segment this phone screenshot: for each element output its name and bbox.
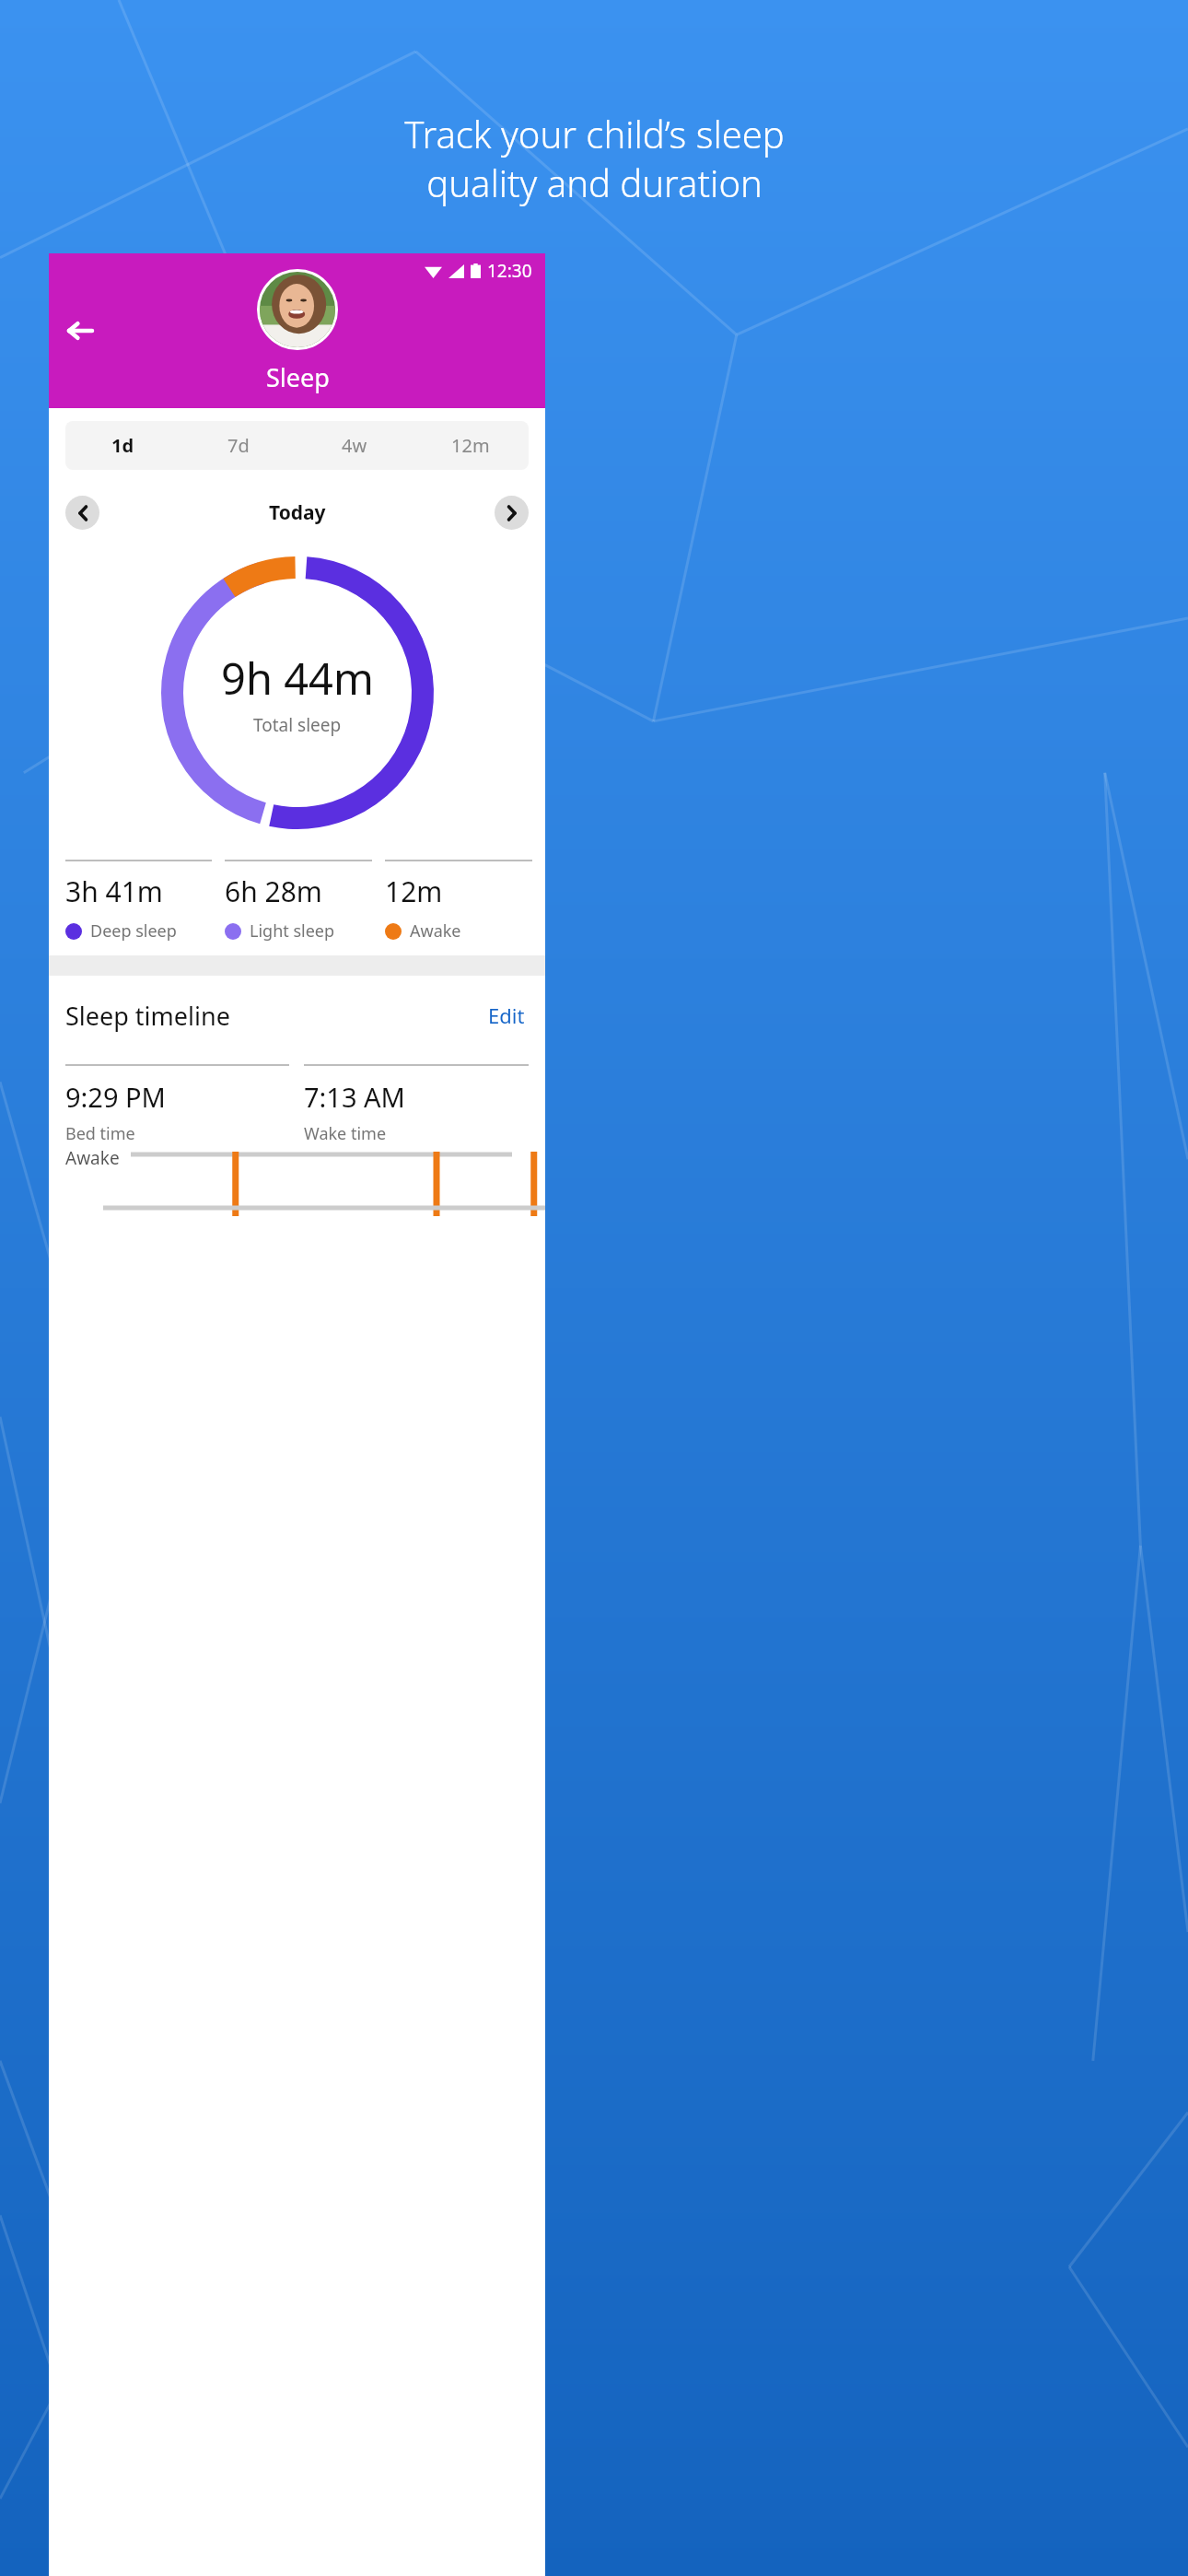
button[interactable]: 7:13 AM bbox=[304, 1064, 529, 1145]
staticText: 4w bbox=[342, 433, 367, 458]
staticText: 7d bbox=[227, 433, 250, 458]
staticText: 7:13 AM bbox=[304, 1079, 405, 1115]
button[interactable]: 7d bbox=[181, 421, 297, 470]
staticText: 3h 41m bbox=[65, 872, 163, 910]
staticText: 9h 44m bbox=[221, 649, 374, 708]
staticText: Light sleep bbox=[250, 919, 335, 943]
staticText: Total sleep bbox=[253, 713, 342, 737]
staticText: Today bbox=[269, 499, 326, 526]
staticText: 12m bbox=[451, 433, 490, 458]
staticText: Track your child’s sleep quality and dur… bbox=[404, 109, 785, 208]
staticText: Awake bbox=[410, 919, 461, 943]
button[interactable]: 4w bbox=[297, 421, 413, 470]
button[interactable]: Previous day bbox=[65, 496, 99, 530]
staticText: 6h 28m bbox=[225, 872, 322, 910]
staticText: Deep sleep bbox=[90, 919, 177, 943]
staticText: Edit bbox=[488, 1001, 525, 1029]
button[interactable]: 3h 41m bbox=[65, 860, 212, 943]
staticText: 12m bbox=[385, 872, 443, 910]
button[interactable]: 12m bbox=[385, 860, 532, 943]
button[interactable]: Back bbox=[56, 307, 104, 355]
staticText: Sleep timeline bbox=[65, 999, 230, 1033]
button[interactable]: 9:29 PM bbox=[65, 1064, 289, 1145]
button[interactable]: Edit bbox=[484, 998, 529, 1033]
staticText: Sleep bbox=[266, 360, 330, 394]
button[interactable]: 12m bbox=[413, 421, 529, 470]
staticText: 1d bbox=[111, 433, 134, 458]
staticText: Awake bbox=[65, 1146, 120, 1170]
button[interactable]: Next day bbox=[495, 496, 529, 530]
staticText: 9:29 PM bbox=[65, 1079, 166, 1115]
staticText: Wake time bbox=[304, 1122, 387, 1145]
button[interactable]: 6h 28m bbox=[225, 860, 372, 943]
staticText: Bed time bbox=[65, 1122, 135, 1145]
staticText: 12:30 bbox=[487, 259, 532, 283]
button[interactable]: 1d bbox=[65, 421, 181, 470]
